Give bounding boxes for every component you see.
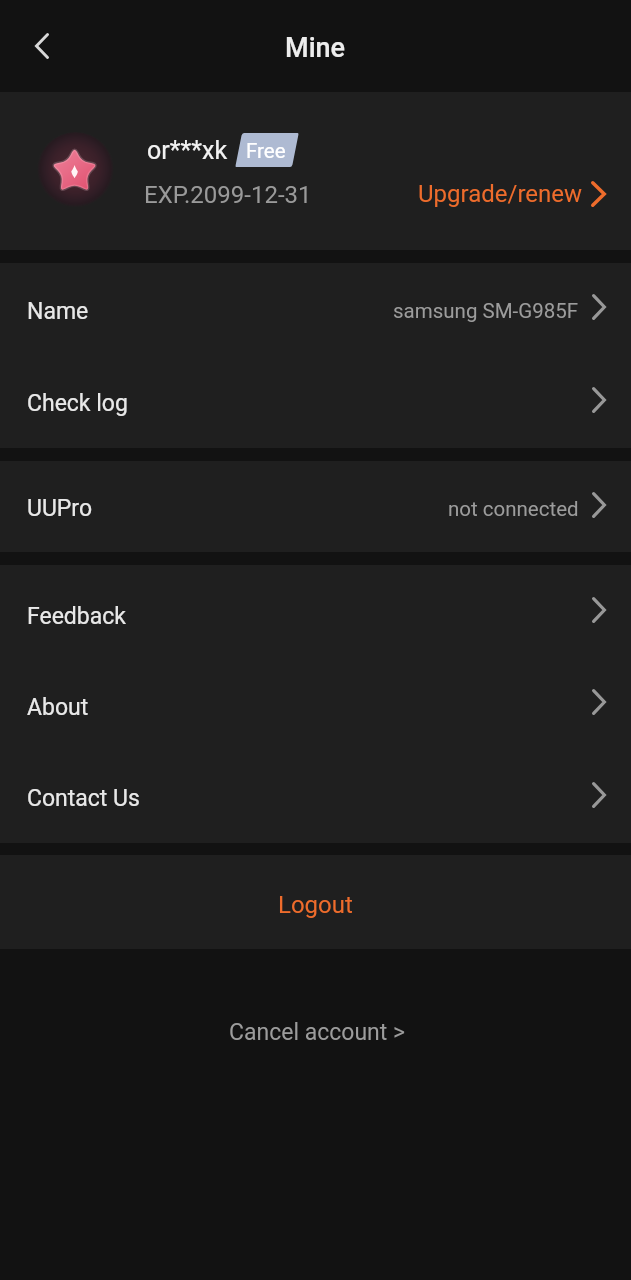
button[interactable]: Check log [0, 355, 631, 448]
staticText: Upgrade/renew [418, 180, 583, 208]
staticText: About [27, 694, 89, 721]
staticText: or***xk [147, 136, 228, 165]
staticText: Mine [285, 32, 346, 64]
button[interactable]: Contact Us [0, 750, 631, 843]
staticText: UUPro [27, 495, 93, 522]
staticText: not connected [448, 497, 579, 521]
staticText: Logout [278, 891, 353, 919]
staticText: samsung SM-G985F [393, 299, 579, 323]
staticText: EXP.2099-12-31 [144, 181, 312, 209]
staticText: Free [246, 139, 286, 163]
staticText: Contact Us [27, 785, 140, 812]
button[interactable]: Upgrade/renew [418, 180, 610, 208]
button[interactable]: Cancel account > [213, 1011, 422, 1054]
staticText: Check log [27, 390, 128, 417]
button[interactable]: Logout [0, 855, 631, 949]
button[interactable]: Back [14, 18, 70, 74]
staticText: Feedback [27, 603, 126, 630]
button[interactable]: UUPro [0, 461, 631, 552]
staticText: Name [27, 298, 89, 325]
button[interactable]: About [0, 658, 631, 750]
button[interactable]: Name [0, 263, 631, 355]
button[interactable]: or***xk [0, 92, 631, 250]
button[interactable]: Feedback [0, 565, 631, 658]
